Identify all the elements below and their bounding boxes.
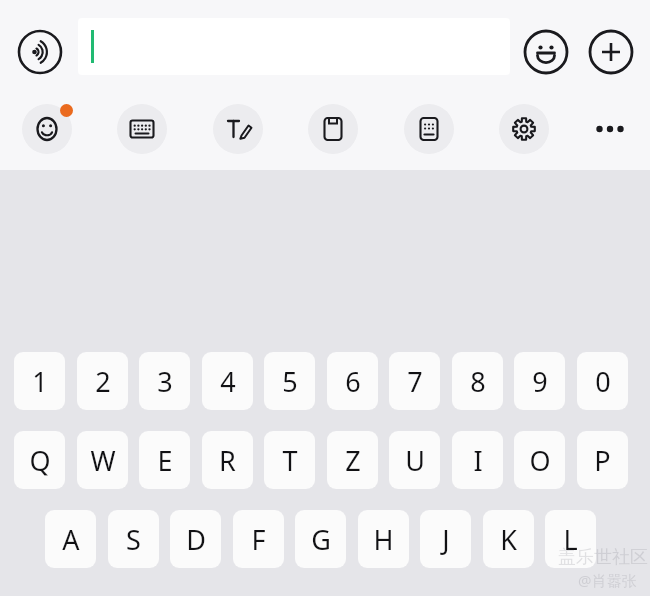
button[interactable]: 1 — [14, 352, 65, 410]
button[interactable]: 2 — [77, 352, 128, 410]
staticText: A — [62, 521, 80, 558]
button[interactable]: 6 — [327, 352, 378, 410]
button[interactable]: A — [45, 510, 96, 568]
button[interactable]: 0 — [577, 352, 628, 410]
button[interactable]: Add — [586, 27, 636, 77]
button[interactable]: Emoji — [521, 27, 571, 77]
staticText: S — [126, 521, 141, 558]
staticText: Q — [29, 442, 51, 479]
staticText: G — [311, 521, 331, 558]
button[interactable]: 4 — [202, 352, 253, 410]
staticText: J — [442, 521, 450, 558]
button[interactable]: Keyboard layout — [117, 104, 167, 154]
staticText: 9 — [532, 363, 548, 400]
button[interactable]: 5 — [264, 352, 315, 410]
button[interactable]: L — [545, 510, 596, 568]
staticText: R — [219, 442, 236, 479]
button[interactable]: D — [170, 510, 221, 568]
staticText: K — [500, 521, 517, 558]
button[interactable]: More — [585, 104, 635, 154]
button[interactable]: O — [514, 431, 565, 489]
button[interactable]: Voice input — [15, 27, 65, 77]
staticText: P — [594, 442, 611, 479]
staticText: 4 — [220, 363, 236, 400]
button[interactable]: Q — [14, 431, 65, 489]
staticText: 0 — [595, 363, 611, 400]
staticText: T — [282, 442, 298, 479]
button[interactable]: Z — [327, 431, 378, 489]
button[interactable] — [78, 18, 510, 75]
button[interactable]: 3 — [139, 352, 190, 410]
button[interactable]: E — [139, 431, 190, 489]
button[interactable]: 8 — [452, 352, 503, 410]
button[interactable]: P — [577, 431, 628, 489]
button[interactable]: R — [202, 431, 253, 489]
button[interactable]: S — [108, 510, 159, 568]
button[interactable]: Settings — [499, 104, 549, 154]
staticText: 1 — [32, 363, 48, 400]
staticText: L — [563, 521, 578, 558]
button[interactable]: 7 — [389, 352, 440, 410]
staticText: 7 — [407, 363, 423, 400]
staticText: H — [373, 521, 394, 558]
button[interactable]: Clipboard — [308, 104, 358, 154]
staticText: D — [186, 521, 206, 558]
button[interactable]: H — [358, 510, 409, 568]
staticText: E — [157, 442, 173, 479]
button[interactable]: Handwriting — [213, 104, 263, 154]
button[interactable]: Number pad — [404, 104, 454, 154]
button[interactable]: 9 — [514, 352, 565, 410]
staticText: U — [405, 442, 425, 479]
button[interactable]: Stickers — [22, 104, 72, 154]
staticText: 5 — [282, 363, 298, 400]
staticText: 2 — [95, 363, 111, 400]
staticText: F — [251, 521, 266, 558]
staticText: O — [529, 442, 551, 479]
button[interactable]: I — [452, 431, 503, 489]
button[interactable]: U — [389, 431, 440, 489]
staticText: @肖嚣张 — [578, 570, 637, 590]
button[interactable]: J — [420, 510, 471, 568]
button[interactable]: T — [264, 431, 315, 489]
staticText: I — [473, 442, 483, 479]
button[interactable]: F — [233, 510, 284, 568]
staticText: 盖乐世社区 — [558, 546, 648, 569]
button[interactable]: K — [483, 510, 534, 568]
staticText: 6 — [345, 363, 361, 400]
button[interactable]: W — [77, 431, 128, 489]
staticText: 3 — [157, 363, 173, 400]
staticText: Z — [345, 442, 361, 479]
button[interactable]: G — [295, 510, 346, 568]
staticText: 8 — [470, 363, 486, 400]
staticText: W — [90, 442, 116, 479]
